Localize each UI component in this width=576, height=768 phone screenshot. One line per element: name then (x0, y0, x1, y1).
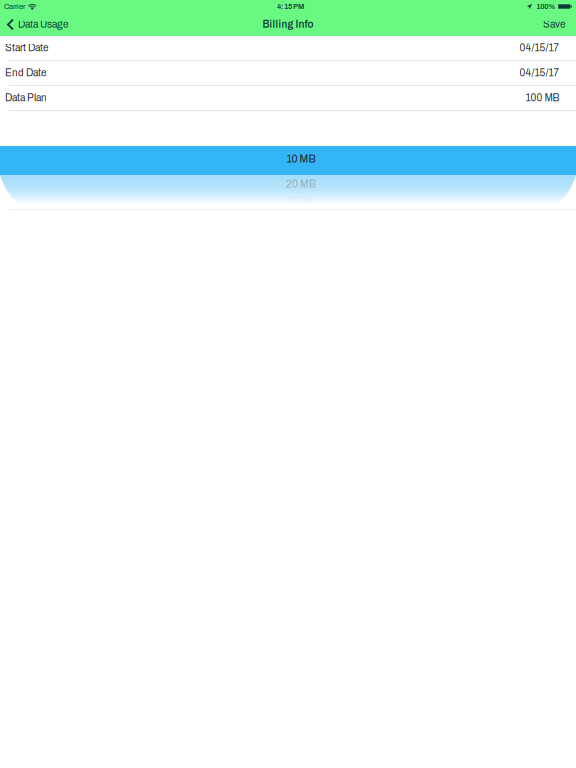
staticText: End Date (5, 68, 46, 78)
staticText: Start Date (5, 43, 48, 53)
staticText: 04/15/17 (519, 43, 559, 53)
button[interactable]: Data Usage (0, 13, 74, 36)
staticText: Billing Info (262, 19, 313, 30)
button[interactable]: Save (531, 13, 576, 36)
staticText: 4:15 PM (277, 2, 304, 10)
button[interactable]: Data Plan (0, 86, 576, 111)
staticText: 100% (536, 2, 555, 10)
staticText: 100 MB (525, 93, 559, 103)
button[interactable]: End Date (0, 61, 576, 86)
staticText: Data Usage (18, 19, 68, 30)
staticText: Save (543, 19, 565, 30)
staticText: 04/15/17 (519, 68, 559, 78)
staticText: Carrier (4, 2, 25, 10)
staticText: 10 MB (286, 153, 315, 165)
button[interactable]: Start Date (0, 36, 576, 61)
staticText: Data Plan (5, 93, 47, 103)
staticText: 20 MB (286, 178, 316, 189)
staticText: 50 MB (288, 195, 313, 205)
